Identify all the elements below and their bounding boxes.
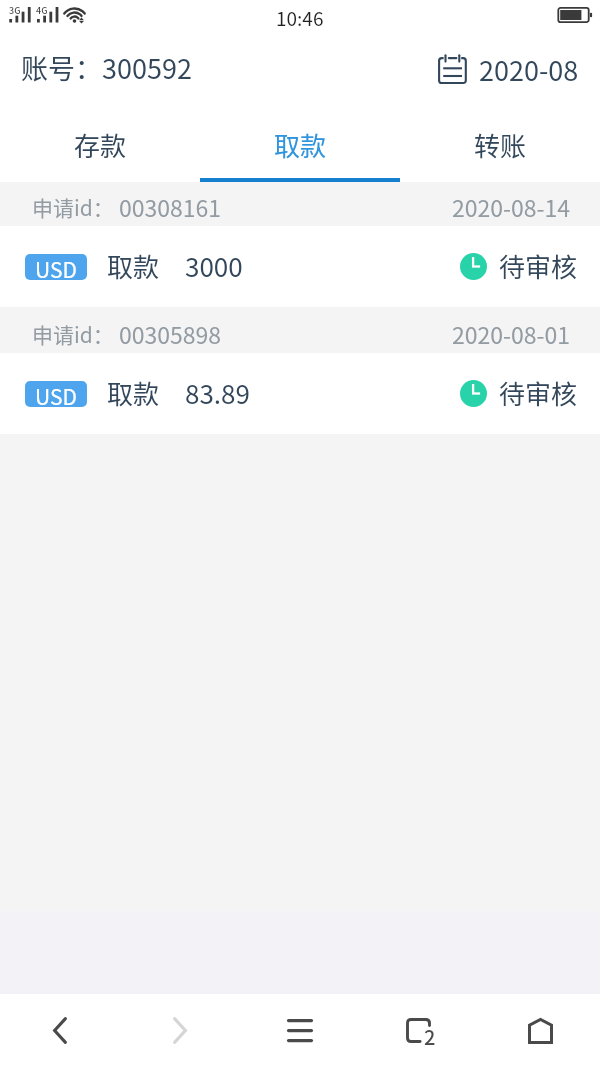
button[interactable]: 存款: [0, 108, 200, 182]
staticText: 10:46: [276, 4, 324, 32]
button[interactable]: Back: [0, 994, 120, 1067]
staticText: 账号：300592: [21, 48, 192, 87]
button[interactable]: 转账: [400, 108, 600, 182]
button[interactable]: Forward: [120, 994, 240, 1067]
button[interactable]: Tabs: [360, 994, 480, 1067]
button[interactable]: 申请id：: [0, 182, 600, 309]
staticText: USD: [35, 381, 77, 407]
staticText: 3000: [185, 247, 243, 285]
staticText: 2020-08: [479, 50, 579, 89]
staticText: 3G: [9, 4, 21, 17]
button[interactable]: 2020-08: [438, 50, 579, 89]
button[interactable]: 取款: [200, 108, 400, 182]
staticText: 申请id：: [32, 192, 114, 222]
button[interactable]: Menu: [240, 994, 360, 1067]
staticText: 00308161: [119, 190, 222, 223]
staticText: 取款: [274, 126, 327, 164]
staticText: 存款: [74, 126, 127, 164]
staticText: 待审核: [499, 374, 578, 412]
staticText: 取款: [107, 247, 160, 285]
staticText: 2020-08-14: [452, 190, 571, 223]
button[interactable]: Home: [480, 994, 600, 1067]
staticText: 取款: [107, 374, 160, 412]
staticText: 4G: [36, 4, 48, 17]
staticText: USD: [35, 254, 77, 280]
staticText: 2: [424, 1022, 436, 1047]
staticText: 00305898: [119, 317, 222, 350]
staticText: 转账: [474, 126, 527, 164]
staticText: 待审核: [499, 247, 578, 285]
staticText: 83.89: [185, 374, 250, 412]
staticText: 2020-08-01: [452, 317, 571, 350]
staticText: 申请id：: [32, 319, 114, 349]
button[interactable]: 申请id：: [0, 309, 600, 436]
